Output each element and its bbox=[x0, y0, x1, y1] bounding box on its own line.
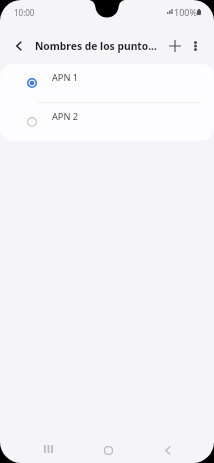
button[interactable]: Recents bbox=[24, 433, 72, 463]
button[interactable]: APN 1 bbox=[0, 64, 214, 102]
staticText: 100% bbox=[174, 6, 197, 18]
staticText: Nombres de los punto... bbox=[35, 39, 160, 53]
button[interactable]: More options bbox=[185, 31, 206, 60]
button[interactable]: Add bbox=[163, 31, 186, 60]
staticText: 10:00 bbox=[14, 7, 35, 18]
staticText: APN 2 bbox=[52, 110, 79, 123]
button[interactable]: Back bbox=[144, 433, 192, 463]
staticText: APN 1 bbox=[52, 71, 79, 84]
button[interactable]: Back bbox=[6, 31, 31, 60]
button[interactable]: APN 2 bbox=[0, 103, 214, 141]
button[interactable]: Home bbox=[84, 433, 132, 463]
